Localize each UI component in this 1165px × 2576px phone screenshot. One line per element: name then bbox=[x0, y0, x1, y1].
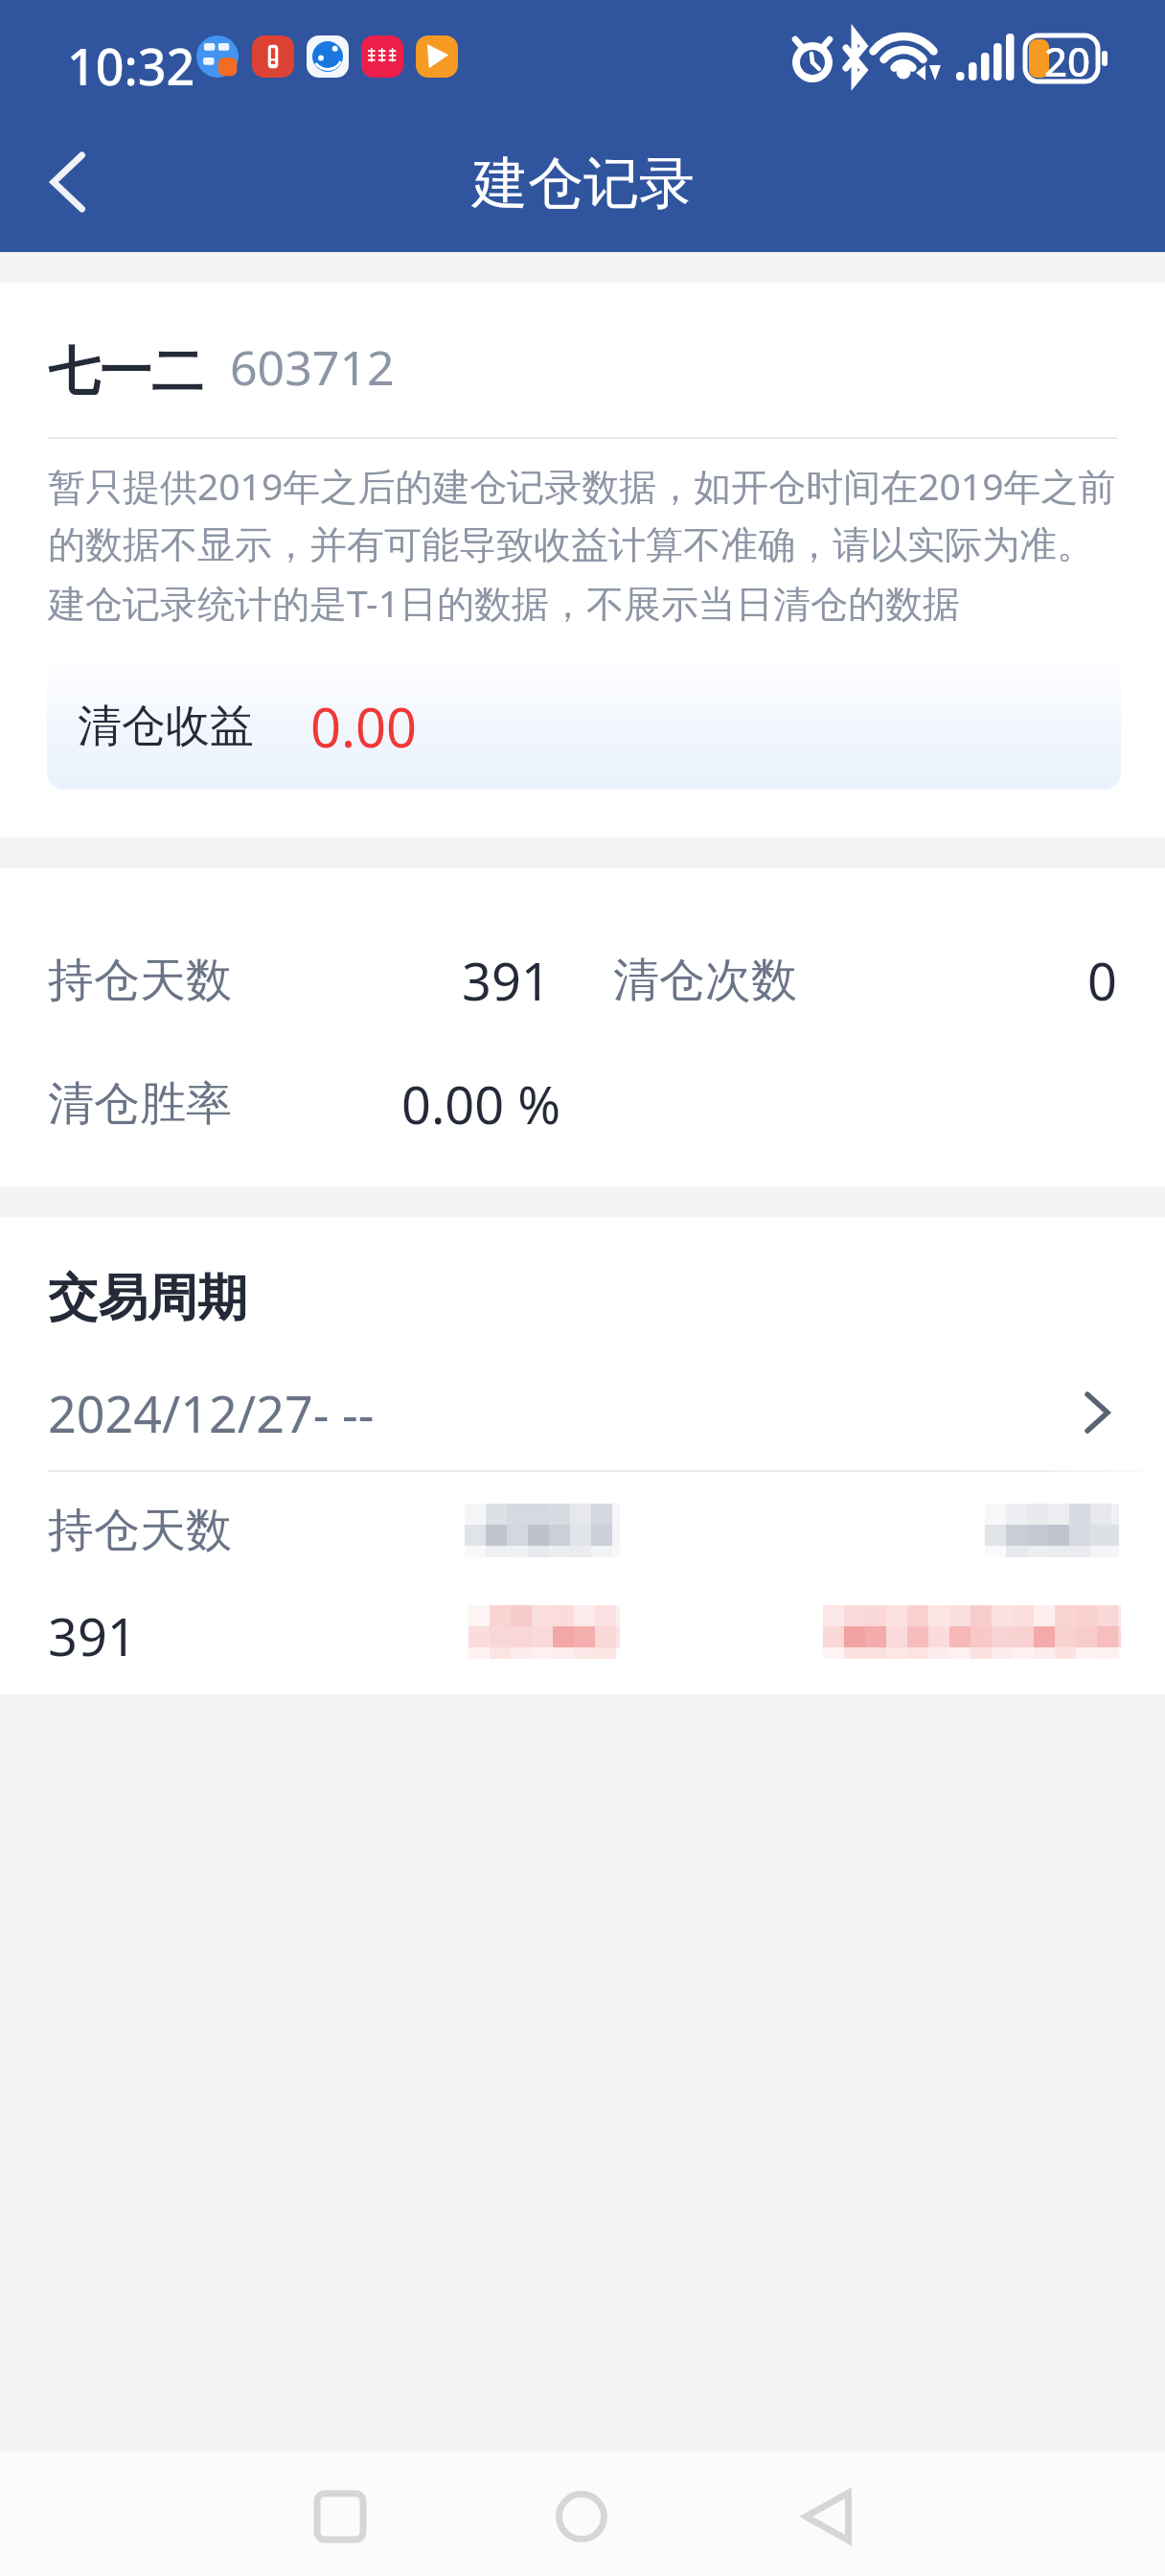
staticText: 持仓天数 bbox=[48, 1502, 232, 1559]
staticText: 清仓次数 bbox=[613, 952, 797, 1009]
staticText: 交易周期 bbox=[48, 1267, 247, 1330]
staticText: 0.00 bbox=[310, 690, 418, 763]
staticText: 建仓记录 bbox=[472, 149, 695, 218]
staticText: 20 bbox=[1044, 34, 1091, 88]
button[interactable]: 2024/12/27- -- bbox=[0, 1375, 1165, 1450]
button[interactable]: 清仓收益 bbox=[47, 662, 1121, 790]
staticText: 0.00 % bbox=[401, 1069, 561, 1139]
staticText: 暂只提供2019年之后的建仓记录数据，如开仓时间在2019年之前的数据不显示，并… bbox=[48, 460, 1127, 629]
staticText: 清仓收益 bbox=[78, 699, 254, 754]
staticText: 清仓胜率 bbox=[48, 1075, 232, 1133]
staticText: 0 bbox=[1087, 945, 1117, 1016]
staticText: 603712 bbox=[230, 334, 395, 400]
staticText: 2024/12/27- -- bbox=[48, 1379, 375, 1447]
button[interactable]: Back bbox=[0, 110, 134, 252]
staticText: 10:32 bbox=[67, 32, 195, 100]
button[interactable]: Home bbox=[524, 2459, 639, 2574]
staticText: 持仓天数 bbox=[48, 952, 232, 1009]
staticText: 391 bbox=[462, 945, 551, 1016]
button[interactable]: Recents bbox=[283, 2459, 398, 2574]
staticText: 391 bbox=[48, 1600, 137, 1664]
button[interactable]: Back bbox=[771, 2459, 886, 2574]
staticText: 七一二 bbox=[48, 339, 203, 404]
